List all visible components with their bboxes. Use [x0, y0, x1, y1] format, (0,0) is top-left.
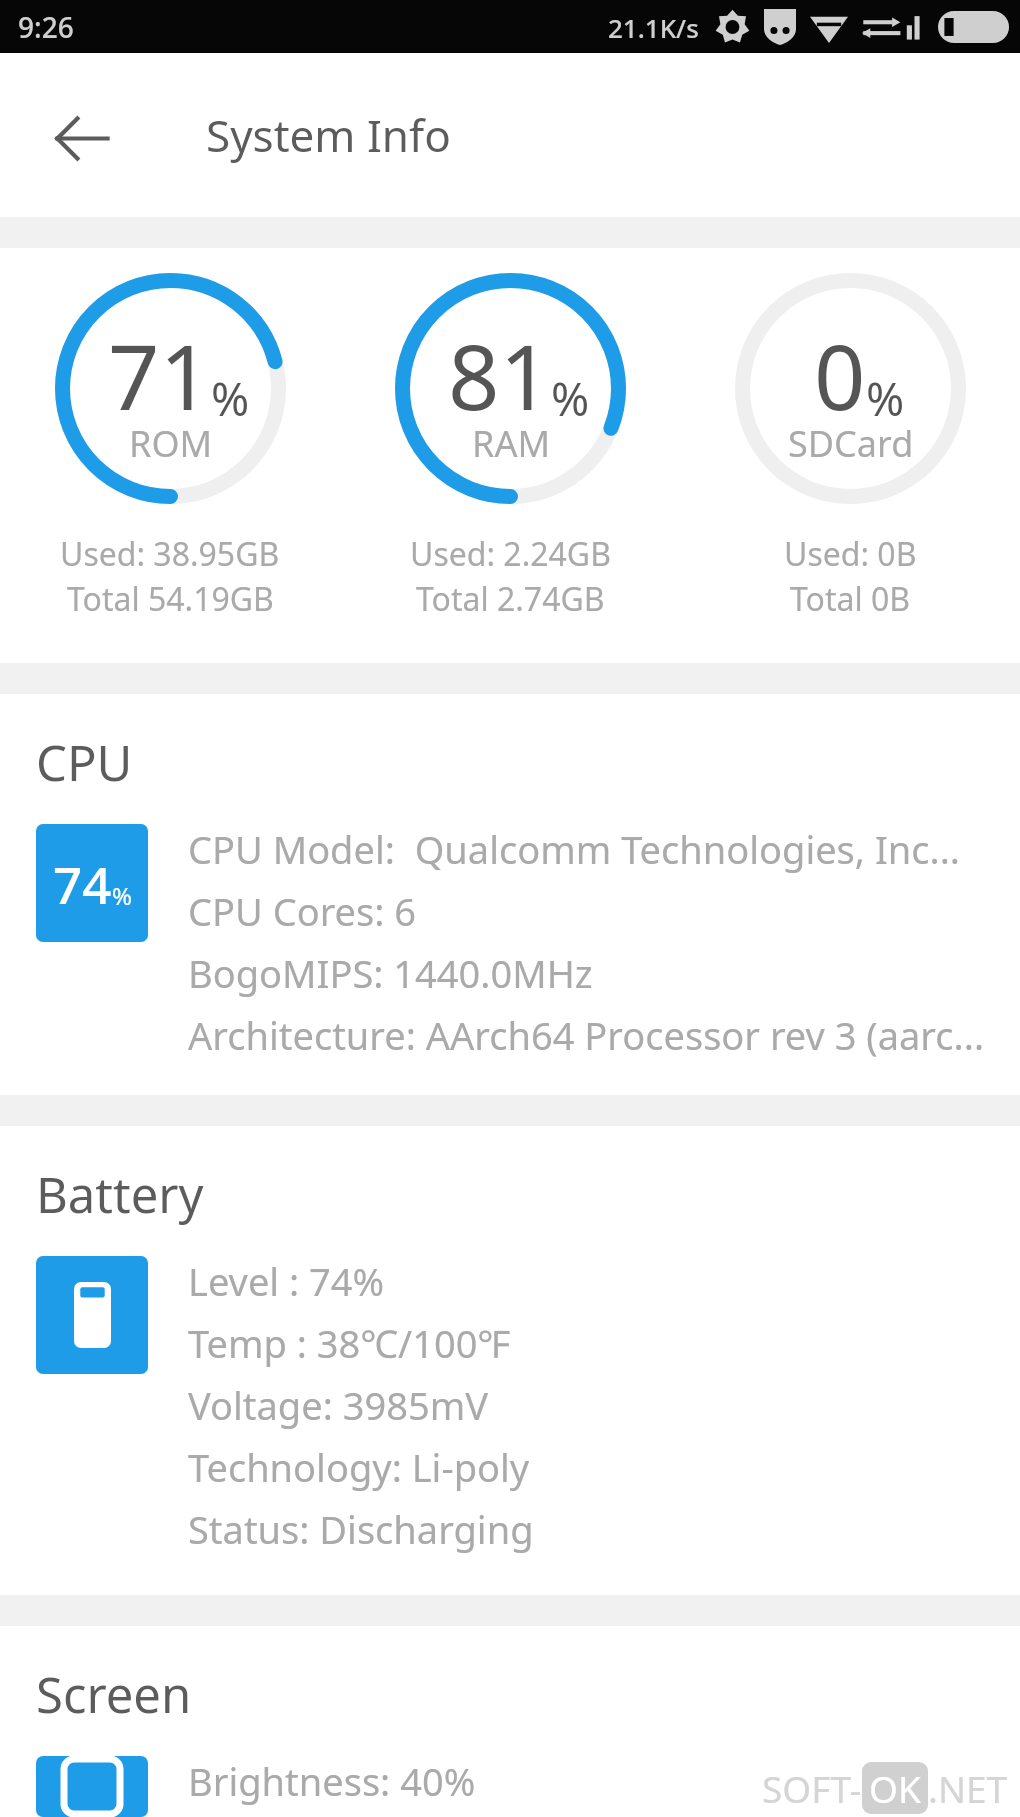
- staticText: %: [112, 879, 132, 912]
- staticText: OK: [869, 1763, 921, 1813]
- staticText: 21.1K/s: [608, 10, 699, 45]
- staticText: RAM: [472, 419, 551, 468]
- button[interactable]: CPU: [0, 694, 1020, 1095]
- staticText: SOFT-: [762, 1763, 862, 1813]
- staticText: 71: [108, 314, 211, 437]
- staticText: Total 0B: [790, 577, 911, 621]
- staticText: %: [211, 367, 250, 430]
- staticText: Brightness: 40%: [188, 1755, 476, 1807]
- staticText: Level : 74%: [188, 1255, 385, 1307]
- staticText: SDCard: [788, 419, 914, 468]
- staticText: 81: [448, 314, 551, 437]
- staticText: %: [551, 367, 590, 430]
- staticText: %: [866, 367, 905, 430]
- button[interactable]: 0: [680, 273, 1020, 621]
- staticText: Architecture: AArch64 Processor rev 3 (a…: [188, 1009, 985, 1061]
- staticText: CPU: [36, 729, 133, 796]
- staticText: Status: Discharging: [188, 1503, 534, 1555]
- staticText: CPU Cores: 6: [188, 885, 417, 937]
- button[interactable]: 81: [340, 273, 680, 621]
- button[interactable]: Screen: [0, 1626, 1020, 1817]
- staticText: Used: 0B: [784, 532, 917, 576]
- staticText: Screen: [36, 1661, 192, 1728]
- staticText: 0: [814, 314, 866, 437]
- staticText: Total 2.74GB: [416, 577, 605, 621]
- staticText: 74: [53, 849, 112, 918]
- staticText: Used: 38.95GB: [60, 532, 280, 576]
- staticText: CPU Model: Qualcomm Technologies, Inc...: [188, 823, 961, 875]
- staticText: 9:26: [18, 8, 74, 46]
- staticText: Total 54.19GB: [67, 577, 274, 621]
- staticText: Technology: Li-poly: [188, 1441, 530, 1493]
- staticText: ROM: [129, 419, 213, 468]
- staticText: System Info: [206, 105, 451, 165]
- staticText: .NET: [928, 1763, 1008, 1813]
- button[interactable]: Back: [32, 85, 132, 185]
- staticText: Temp : 38℃/100℉: [188, 1317, 511, 1369]
- staticText: Battery: [36, 1161, 204, 1228]
- button[interactable]: 71: [0, 273, 340, 621]
- button[interactable]: Battery: [0, 1126, 1020, 1595]
- staticText: BogoMIPS: 1440.0MHz: [188, 947, 593, 999]
- staticText: Voltage: 3985mV: [188, 1379, 489, 1431]
- staticText: Used: 2.24GB: [410, 532, 611, 576]
